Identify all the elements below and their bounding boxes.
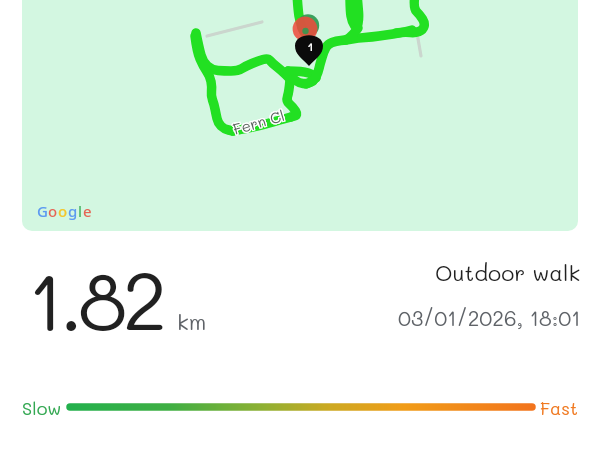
staticText: e [83, 201, 92, 221]
staticText: Outdoor walk [435, 258, 581, 287]
staticText: o [48, 201, 58, 221]
staticText: G [37, 201, 48, 221]
staticText: Fern Cl [230, 105, 287, 138]
staticText: Fast [540, 396, 578, 419]
staticText: Fern Cl [230, 106, 286, 139]
staticText: 03/01/2026, 18:01 [398, 304, 581, 331]
button[interactable]: Route map [22, 0, 578, 231]
staticText: Fern Cl [229, 104, 285, 137]
staticText: 1 [307, 37, 315, 51]
staticText: Fern Cl [229, 105, 286, 138]
staticText: Fern Cl [230, 104, 286, 137]
staticText: Fern Cl [232, 106, 288, 139]
staticText: g [68, 201, 78, 221]
staticText: 1.82 [28, 246, 163, 351]
staticText: o [58, 201, 68, 221]
staticText: Slow [22, 396, 62, 419]
staticText: Fern Cl [231, 104, 287, 137]
staticText: km [177, 307, 207, 336]
staticText: Fern Cl [231, 106, 287, 139]
staticText: l [78, 201, 83, 221]
staticText: Fern Cl [231, 105, 288, 138]
